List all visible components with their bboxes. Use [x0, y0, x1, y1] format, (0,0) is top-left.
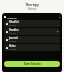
button[interactable]: Start Session [4, 61, 60, 67]
staticText: Start Session [24, 62, 41, 66]
button[interactable]: Journal [4, 36, 60, 43]
staticText: Mindful [9, 20, 19, 24]
button[interactable]: Breathe [4, 28, 60, 35]
staticText: Sessions [7, 16, 17, 19]
button[interactable]: Mindful [4, 20, 60, 27]
staticText: 30 min [9, 48, 17, 51]
staticText: Therapy [0, 2, 64, 7]
staticText: 15 min [9, 32, 17, 35]
button[interactable]: Sessions [4, 15, 60, 19]
staticText: 20 min [9, 24, 17, 27]
staticText: History [0, 7, 64, 11]
button[interactable]: Relax [4, 44, 60, 51]
staticText: 10 min [9, 40, 17, 43]
staticText: Breathe [9, 28, 19, 32]
staticText: Journal [9, 36, 18, 40]
staticText: Relax [9, 44, 16, 48]
